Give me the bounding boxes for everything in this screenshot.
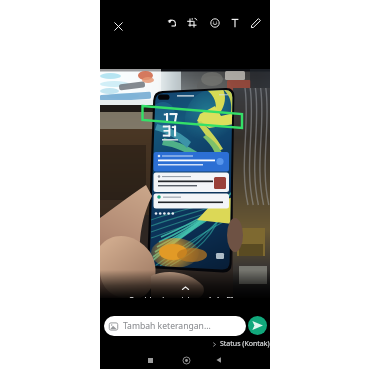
- staticText: Tambah keterangan...: [123, 320, 211, 332]
- button[interactable]: Back: [214, 355, 224, 365]
- button[interactable]: Status (Kontak): [212, 339, 270, 349]
- button[interactable]: Sticker: [206, 14, 224, 32]
- button[interactable]: Draw: [247, 14, 265, 32]
- staticText: Gesek ke atas untuk membuka filter: [129, 295, 241, 304]
- button[interactable]: Tambah keterangan...: [104, 316, 246, 336]
- button[interactable]: Recents: [145, 355, 155, 365]
- button[interactable]: Close: [106, 14, 131, 39]
- button[interactable]: Undo: [163, 14, 181, 32]
- button[interactable]: Crop: [183, 14, 201, 32]
- button[interactable]: Text: [226, 14, 244, 32]
- button[interactable]: Send: [248, 316, 267, 335]
- button[interactable]: Home: [180, 354, 192, 366]
- staticText: Status (Kontak): [220, 339, 270, 349]
